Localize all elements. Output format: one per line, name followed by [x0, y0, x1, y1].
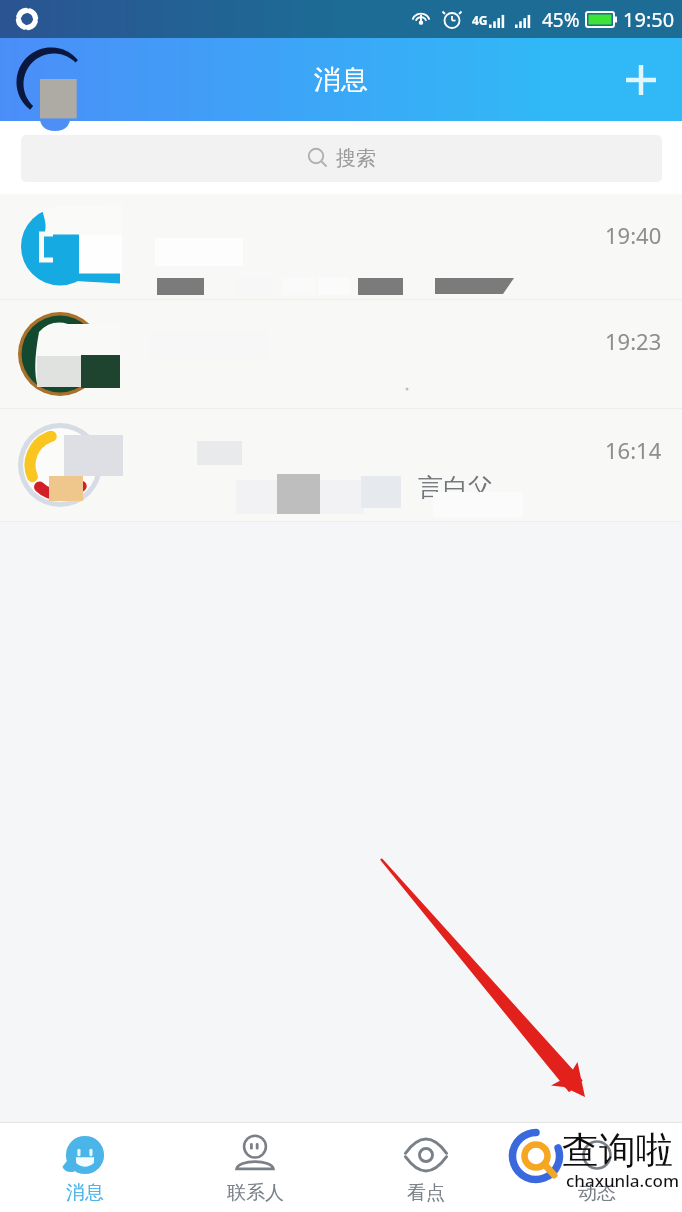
staticText: 看点: [407, 1181, 445, 1205]
staticText: 消息: [314, 63, 368, 97]
staticText: chaxunla.com: [566, 1169, 680, 1192]
button[interactable]: 16:14: [0, 409, 682, 521]
button[interactable]: Add: [614, 53, 668, 107]
staticText: 19:40: [605, 220, 662, 250]
staticText: 联系人: [227, 1181, 284, 1205]
button[interactable]: 动态: [511, 1123, 682, 1205]
button[interactable]: Profile: [0, 38, 682, 121]
staticText: 搜索: [336, 146, 376, 171]
staticText: 19:23: [605, 326, 662, 356]
staticText: 19:50: [623, 6, 675, 33]
staticText: 4G: [472, 12, 488, 28]
staticText: 消息: [66, 1181, 104, 1205]
button[interactable]: 联系人: [170, 1123, 340, 1205]
button[interactable]: 消息: [0, 1123, 170, 1205]
staticText: 45%: [542, 7, 580, 33]
staticText: 16:14: [605, 435, 662, 465]
staticText: 动态: [578, 1181, 616, 1205]
staticText: 言白父: [418, 472, 493, 503]
staticText: 查询啦: [562, 1127, 673, 1174]
button[interactable]: 19:40: [0, 194, 682, 299]
button[interactable]: 看点: [340, 1123, 511, 1205]
button[interactable]: 搜索: [21, 135, 662, 182]
button[interactable]: 19:23: [0, 300, 682, 408]
